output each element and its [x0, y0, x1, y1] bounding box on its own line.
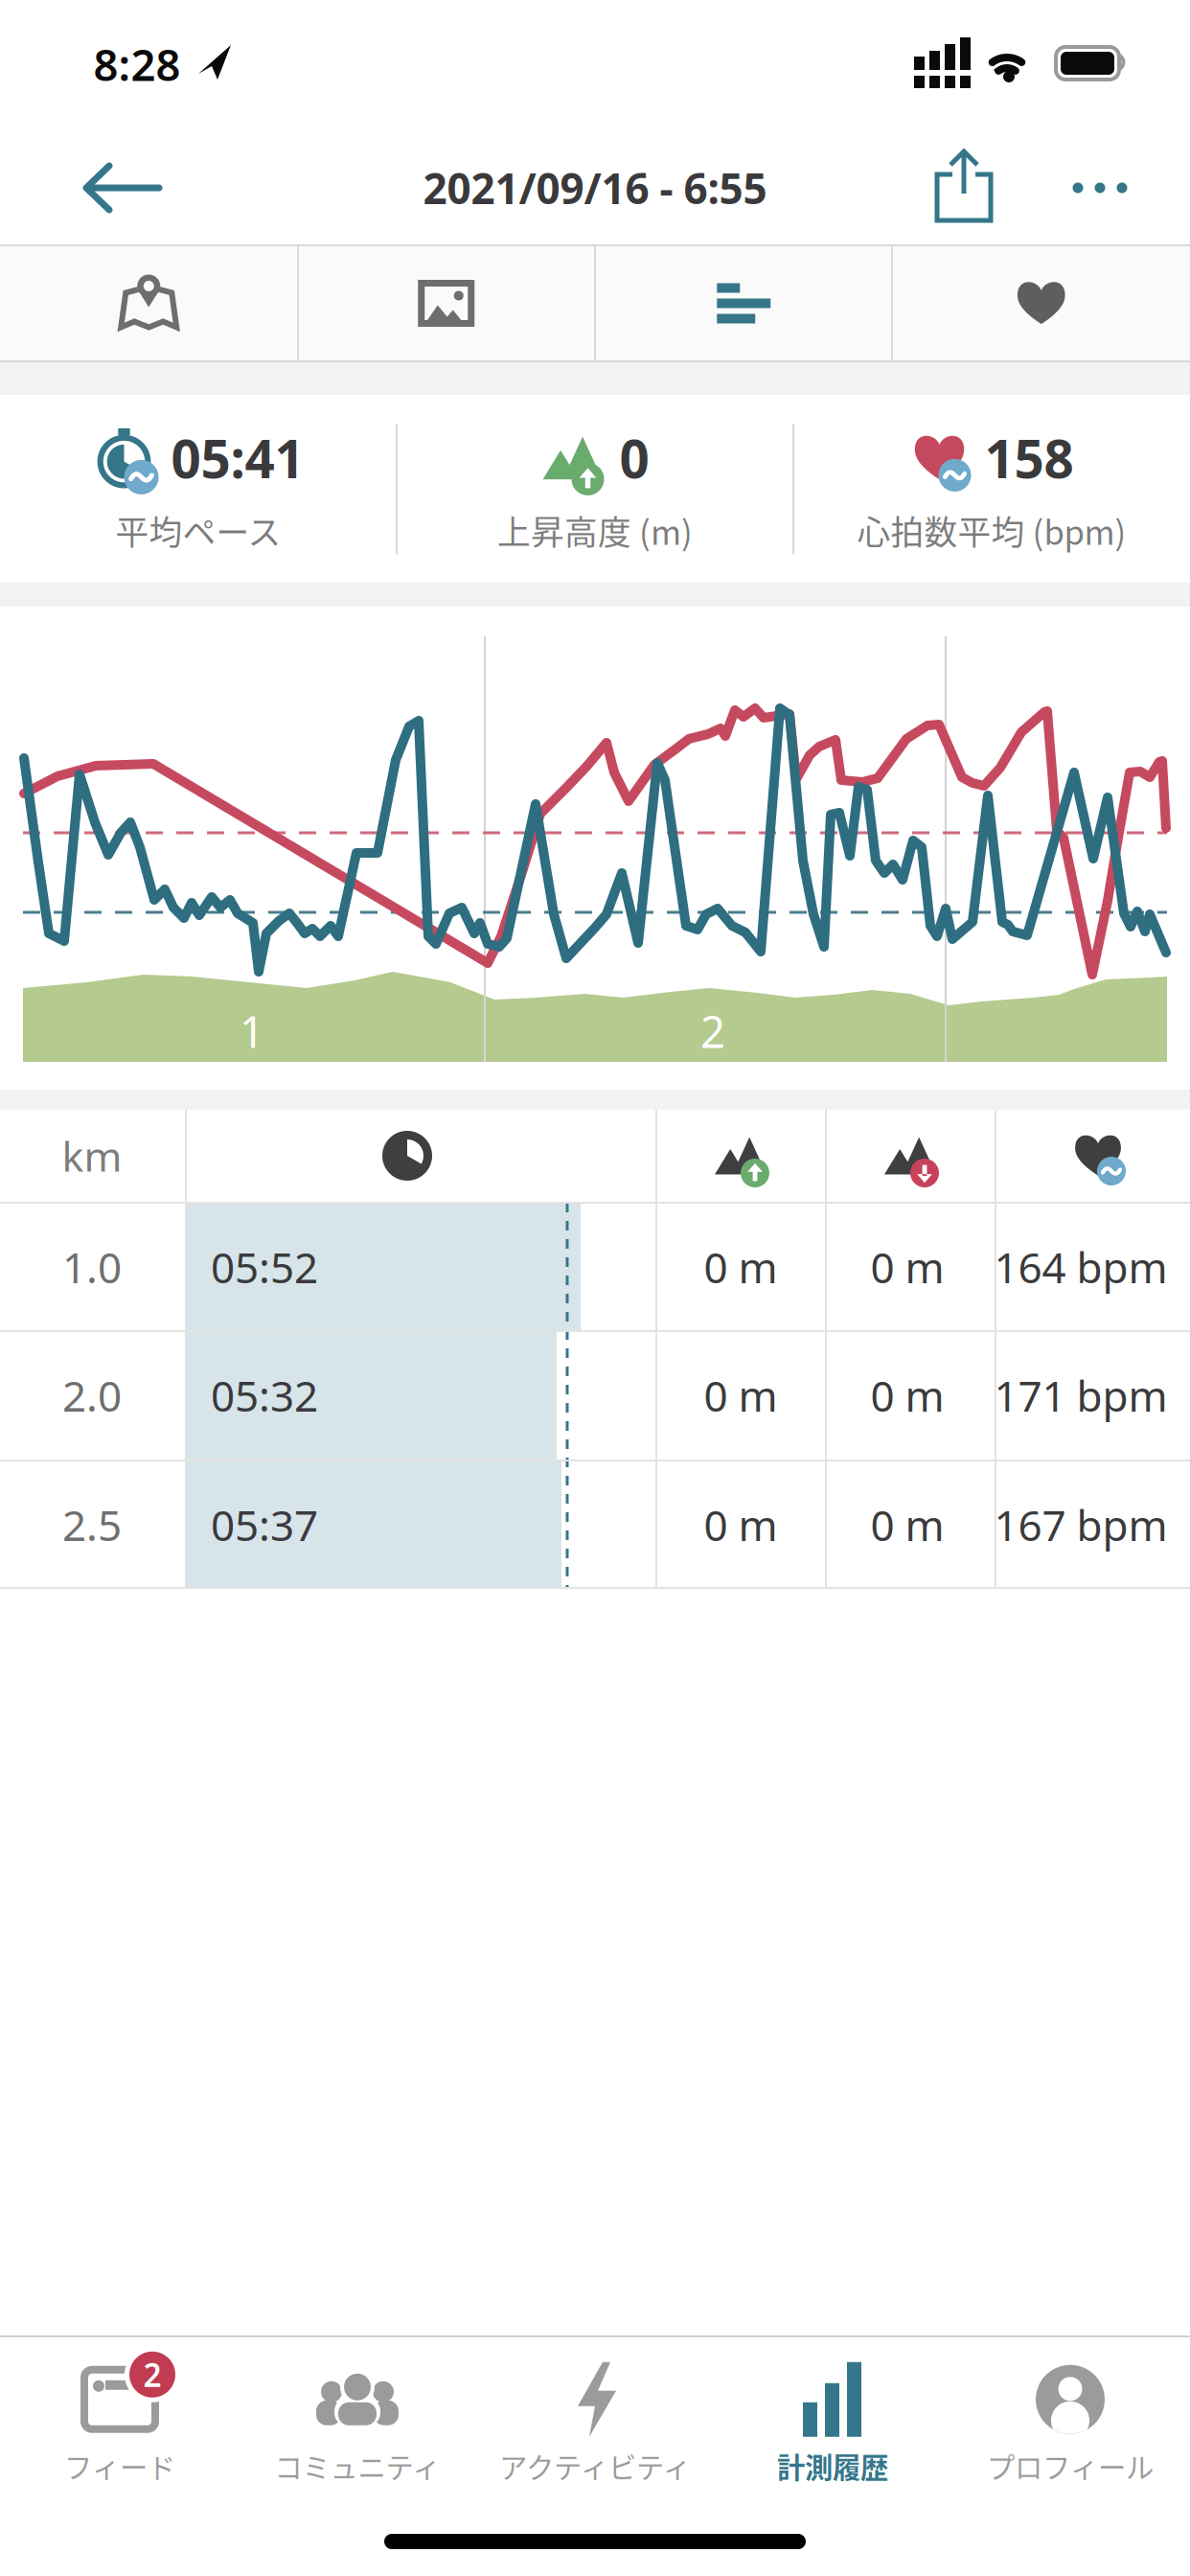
staticText: 0 m: [870, 1239, 944, 1295]
staticText: 2.5: [62, 1497, 122, 1553]
staticText: 2.0: [62, 1367, 122, 1423]
staticText: 0: [619, 423, 649, 493]
button[interactable]: 計測履歴: [714, 2341, 951, 2504]
button[interactable]: Share: [923, 136, 1005, 236]
staticText: 8:28: [93, 35, 181, 93]
staticText: 平均ペース: [115, 506, 281, 554]
staticText: コミュニティ: [275, 2445, 440, 2486]
staticText: 05:32: [211, 1367, 318, 1423]
button[interactable]: Photos: [297, 244, 595, 362]
staticText: 計測履歴: [777, 2445, 888, 2486]
staticText: 0 m: [870, 1367, 944, 1423]
staticText: 0 m: [870, 1497, 944, 1553]
staticText: 158: [984, 423, 1074, 493]
staticText: 1.0: [62, 1239, 122, 1295]
button[interactable]: コミュニティ: [239, 2341, 476, 2504]
staticText: 0 m: [704, 1239, 778, 1295]
button[interactable]: アクティビティ: [476, 2341, 714, 2504]
staticText: 2: [700, 1002, 725, 1060]
staticText: 心拍数平均 (bpm): [857, 506, 1126, 554]
button[interactable]: プロフィール: [951, 2341, 1189, 2504]
button[interactable]: More: [1057, 167, 1143, 208]
button[interactable]: Charts: [595, 244, 892, 362]
staticText: プロフィール: [987, 2445, 1154, 2486]
staticText: 05:52: [211, 1239, 318, 1295]
button[interactable]: Heart rate: [892, 244, 1190, 362]
staticText: 171 bpm: [994, 1367, 1167, 1423]
staticText: 上昇高度 (m): [497, 506, 693, 554]
button[interactable]: Back: [65, 147, 180, 229]
staticText: 0 m: [704, 1367, 778, 1423]
staticText: 05:37: [211, 1497, 318, 1553]
staticText: フィード: [64, 2445, 175, 2486]
button[interactable]: 2: [1, 2341, 239, 2504]
staticText: 2: [143, 2353, 161, 2396]
staticText: 05:41: [171, 423, 304, 493]
button[interactable]: Map: [0, 244, 297, 362]
staticText: 1: [240, 1002, 264, 1060]
staticText: km: [62, 1129, 122, 1183]
staticText: 167 bpm: [994, 1497, 1167, 1553]
staticText: 0 m: [704, 1497, 778, 1553]
staticText: アクティビティ: [499, 2445, 691, 2486]
staticText: 164 bpm: [994, 1239, 1167, 1295]
staticText: 2021/09/16 - 6:55: [423, 160, 767, 216]
